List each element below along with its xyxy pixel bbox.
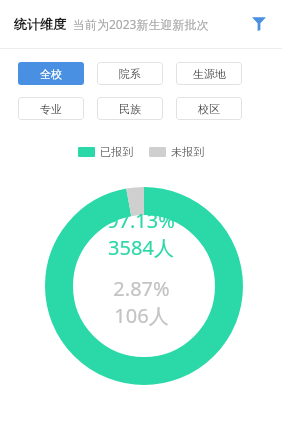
staticText: 全校	[40, 67, 62, 81]
button[interactable]: 生源地	[176, 62, 242, 85]
staticText: 当前为2023新生迎新批次	[73, 16, 209, 32]
staticText: 2.87%	[113, 275, 170, 302]
button[interactable]: 专业	[18, 97, 84, 120]
button[interactable]: 全校	[18, 62, 84, 85]
button[interactable]: 民族	[97, 97, 163, 120]
staticText: 未报到	[171, 145, 204, 159]
staticText: 106人	[114, 302, 169, 329]
button[interactable]: 院系	[97, 62, 163, 85]
staticText: 院系	[119, 67, 141, 81]
staticText: 统计维度	[14, 16, 66, 32]
staticText: 生源地	[193, 67, 226, 81]
staticText: 97.13%	[107, 207, 175, 234]
staticText: 已报到	[100, 145, 133, 159]
button[interactable]: Filter	[246, 11, 272, 37]
staticText: 校区	[198, 102, 220, 116]
staticText: 专业	[40, 102, 62, 116]
staticText: 民族	[119, 102, 141, 116]
staticText: 3584人	[108, 234, 174, 261]
button[interactable]: 校区	[176, 97, 242, 120]
